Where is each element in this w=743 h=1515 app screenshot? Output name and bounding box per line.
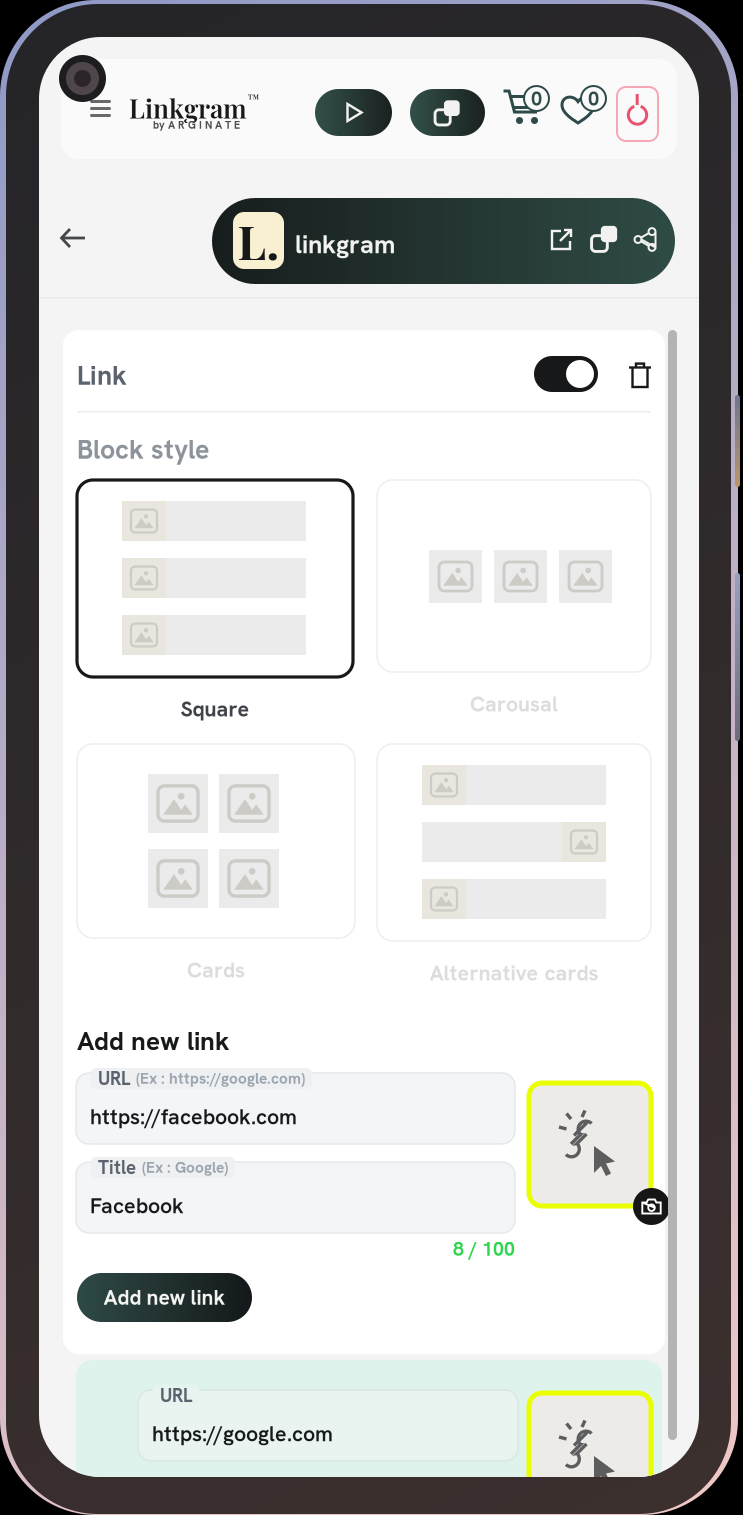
staticText: https://google.com (152, 1420, 333, 1448)
button[interactable]: Favourites (560, 88, 606, 126)
button[interactable]: Delete link (620, 354, 660, 396)
staticText: https://facebook.com (90, 1103, 297, 1131)
staticText: linkgram (295, 228, 395, 261)
staticText: Facebook (90, 1192, 184, 1220)
staticText: Link (77, 358, 127, 393)
button[interactable]: Square (77, 480, 353, 725)
staticText: 0 (588, 85, 599, 112)
staticText: Block style (77, 432, 209, 467)
staticText: (Ex : Google) (142, 1157, 228, 1177)
button[interactable]: Alternative cards (377, 744, 651, 989)
staticText: Carousal (470, 690, 558, 718)
button[interactable]: Link enabled (534, 356, 598, 392)
staticText: ™ (247, 90, 260, 106)
staticText: 0 (531, 85, 542, 112)
staticText: URL (98, 1066, 130, 1091)
staticText: Square (180, 695, 249, 723)
staticText: Cards (187, 956, 245, 984)
button[interactable]: Back (46, 213, 100, 263)
button[interactable]: Menu (82, 92, 119, 125)
staticText: Title (98, 1155, 136, 1180)
button[interactable]: Choose preview image (529, 1083, 670, 1225)
staticText: (Ex : https://google.com) (136, 1068, 305, 1088)
button[interactable]: Log out (617, 87, 658, 141)
staticText: Add new link (77, 1024, 230, 1058)
staticText: Add new link (103, 1284, 225, 1311)
staticText: Alternative cards (429, 959, 598, 987)
button[interactable]: Carousal (377, 480, 651, 720)
button[interactable]: Cart (502, 88, 550, 126)
staticText: Linkgram (129, 90, 247, 125)
button[interactable]: Add new link (77, 1273, 252, 1322)
staticText: 8 / 100 (453, 1236, 515, 1262)
button[interactable]: Choose preview image (529, 1393, 670, 1515)
button[interactable]: L. (212, 198, 675, 284)
button[interactable]: Duplicate (410, 89, 485, 136)
staticText: URL (160, 1383, 192, 1408)
button[interactable]: Preview (315, 89, 392, 136)
staticText: L. (237, 209, 279, 272)
staticText: by A R G I N A T E (153, 118, 240, 132)
button[interactable]: Cards (77, 744, 355, 986)
